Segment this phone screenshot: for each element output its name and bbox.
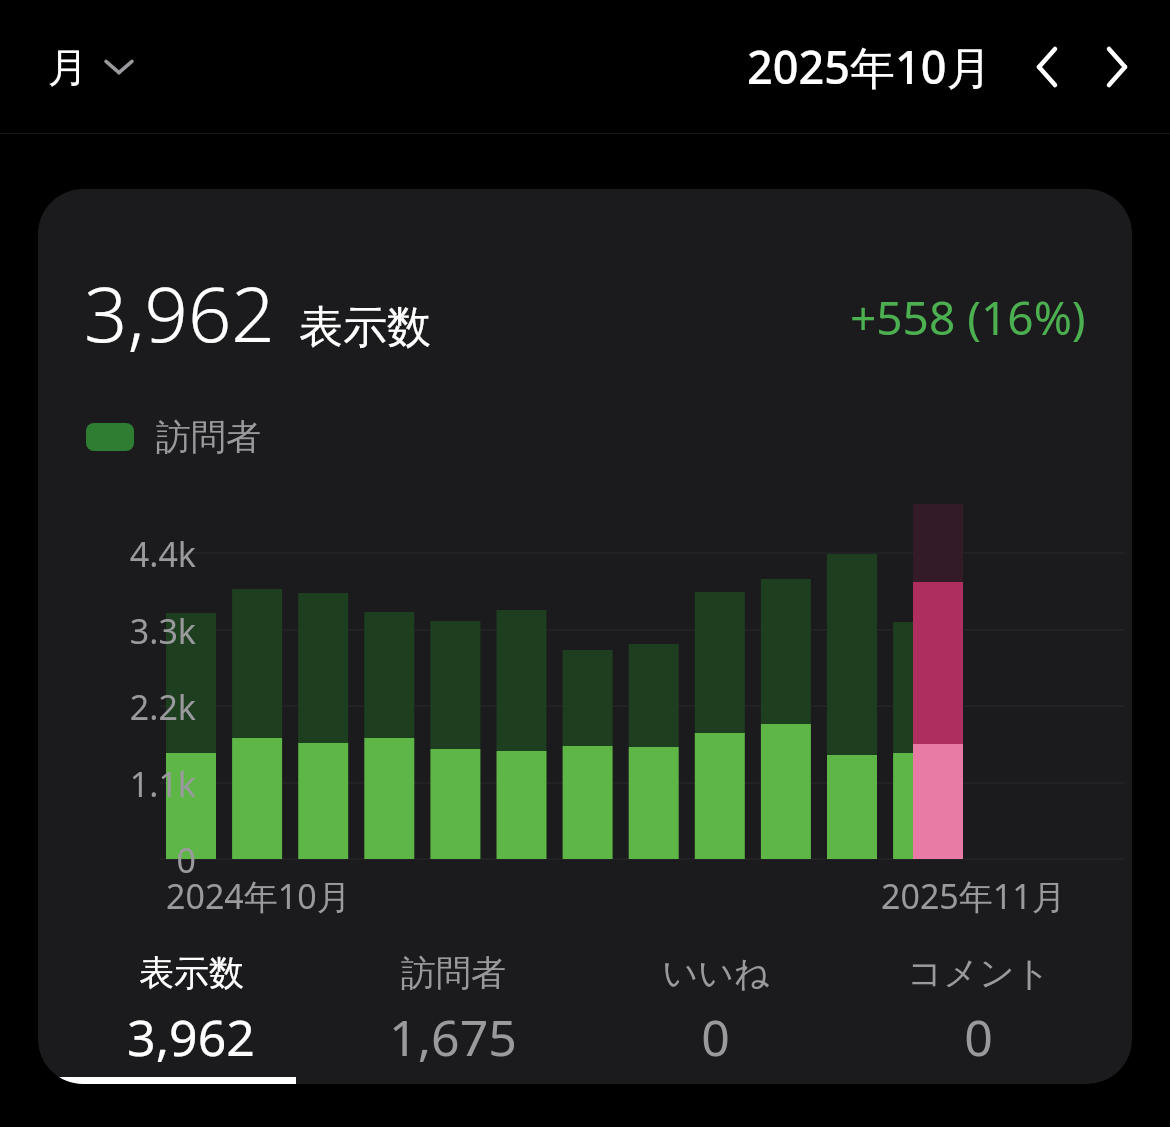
staticText: コメント [907,951,1051,995]
staticText: 表示数 [139,951,244,995]
staticText: 3,962 [84,261,275,365]
button[interactable]: いいね [584,947,847,1075]
staticText: 2025年11月 [881,873,1066,919]
staticText: 2.2k [66,684,196,730]
staticText: 4.4k [66,531,196,577]
staticText: いいね [662,951,770,995]
button[interactable]: コメント [847,947,1110,1075]
button[interactable]: 訪問者 [322,947,584,1075]
staticText: 0 [701,1003,730,1071]
staticText: 0 [66,837,196,883]
staticText: 0 [964,1003,993,1071]
staticText: 1,675 [389,1003,517,1071]
staticText: 3.3k [66,608,196,654]
staticText: 2025年10月 [747,36,992,97]
button[interactable]: 次の月 [1088,38,1146,96]
staticText: 1.1k [66,761,196,807]
staticText: 訪問者 [156,415,261,459]
button[interactable]: 表示数 [60,947,322,1075]
staticText: 3,962 [127,1003,255,1071]
staticText: +558 (16%) [850,286,1086,349]
staticText: 2024年10月 [166,873,351,919]
staticText: 月 [48,42,88,92]
button[interactable]: 3,962 [38,189,1132,1084]
staticText: 表示数 [299,300,431,355]
button[interactable]: 前の月 [1018,38,1076,96]
staticText: 訪問者 [401,951,506,995]
button[interactable]: 訪問者 [84,413,263,461]
button[interactable]: 月 [36,34,144,100]
